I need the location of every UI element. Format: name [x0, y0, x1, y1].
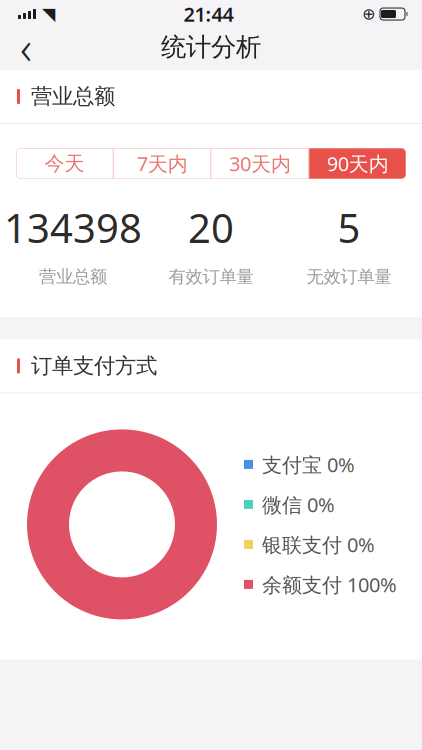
staticText: 5 — [337, 201, 360, 254]
staticText: 有效订单量 — [168, 266, 253, 287]
staticText: 7天内 — [137, 150, 188, 177]
staticText: 134398 — [4, 201, 142, 254]
button[interactable]: 7天内 — [114, 148, 211, 179]
staticText: 微信 0% — [262, 491, 335, 518]
button[interactable]: 今天 — [16, 148, 113, 179]
staticText: ◥ — [42, 4, 55, 24]
staticText: ⊕ — [362, 5, 375, 23]
staticText: 统计分析 — [161, 31, 261, 62]
staticText: 20 — [188, 201, 234, 254]
staticText: 营业总额 — [31, 83, 115, 110]
button[interactable]: Back — [0, 26, 52, 68]
staticText: 90天内 — [327, 150, 389, 177]
staticText: 30天内 — [229, 150, 291, 177]
staticText: 余额支付 100% — [262, 571, 397, 598]
staticText: 营业总额 — [39, 266, 107, 287]
button[interactable]: 30天内 — [211, 148, 308, 179]
staticText: 支付宝 0% — [262, 451, 355, 478]
button[interactable]: 90天内 — [309, 148, 406, 179]
staticText: 银联支付 0% — [262, 531, 375, 558]
staticText: 21:44 — [183, 1, 233, 27]
staticText: 今天 — [44, 151, 84, 176]
staticText: 无效订单量 — [306, 266, 391, 287]
staticText: 订单支付方式 — [31, 353, 157, 379]
staticText: ‹ — [20, 17, 32, 77]
